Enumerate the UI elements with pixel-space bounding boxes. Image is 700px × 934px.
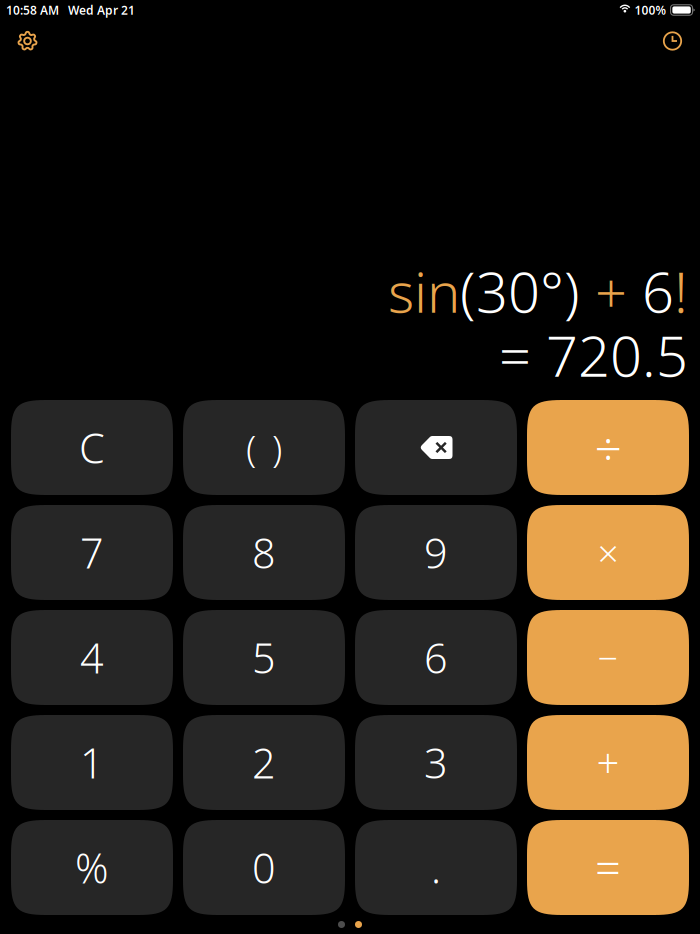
staticText: sin [388, 254, 460, 328]
staticText: 6 [642, 254, 674, 328]
staticText: 9 [424, 525, 448, 580]
staticText: (30°) [460, 254, 580, 328]
staticText: . [431, 840, 441, 895]
button[interactable]: 0 [183, 820, 345, 915]
button[interactable]: 3 [355, 715, 517, 810]
button[interactable]: = [527, 820, 689, 915]
button[interactable]: × [527, 505, 689, 600]
staticText: ! [674, 254, 688, 328]
button[interactable]: 2 [183, 715, 345, 810]
button[interactable]: % [11, 820, 173, 915]
staticText: = [595, 837, 621, 898]
staticText: 7 [80, 525, 104, 580]
staticText: 3 [424, 735, 448, 790]
staticText: 10:58 AM Wed Apr 21 [6, 2, 135, 18]
staticText: 8 [252, 525, 276, 580]
staticText: 5 [252, 630, 276, 685]
button[interactable]: + [527, 715, 689, 810]
staticText: C [79, 420, 105, 475]
staticText: + [596, 736, 619, 789]
staticText: − [597, 634, 618, 681]
button[interactable]: History [655, 24, 689, 58]
button[interactable]: 9 [355, 505, 517, 600]
staticText: 100% [631, 2, 666, 18]
staticText: 1 [80, 735, 104, 790]
staticText: % [75, 840, 109, 895]
button[interactable]: C [11, 400, 173, 495]
staticText: ( ) [246, 423, 282, 472]
button[interactable]: 1 [11, 715, 173, 810]
button[interactable]: 4 [11, 610, 173, 705]
button[interactable]: . [355, 820, 517, 915]
button[interactable]: Settings [10, 24, 44, 58]
button[interactable]: 5 [183, 610, 345, 705]
button[interactable]: Delete [355, 400, 517, 495]
staticText: 0 [252, 840, 276, 895]
button[interactable]: ( ) [183, 400, 345, 495]
button[interactable]: 6 [355, 610, 517, 705]
staticText: = 720.5 [499, 318, 688, 392]
button[interactable]: 8 [183, 505, 345, 600]
button[interactable]: 7 [11, 505, 173, 600]
staticText: 2 [252, 735, 276, 790]
staticText: + [580, 254, 642, 328]
staticText: 4 [80, 630, 104, 685]
staticText: × [597, 528, 618, 577]
button[interactable]: − [527, 610, 689, 705]
staticText: ÷ [594, 416, 621, 479]
button[interactable]: ÷ [527, 400, 689, 495]
staticText: 6 [424, 630, 448, 685]
